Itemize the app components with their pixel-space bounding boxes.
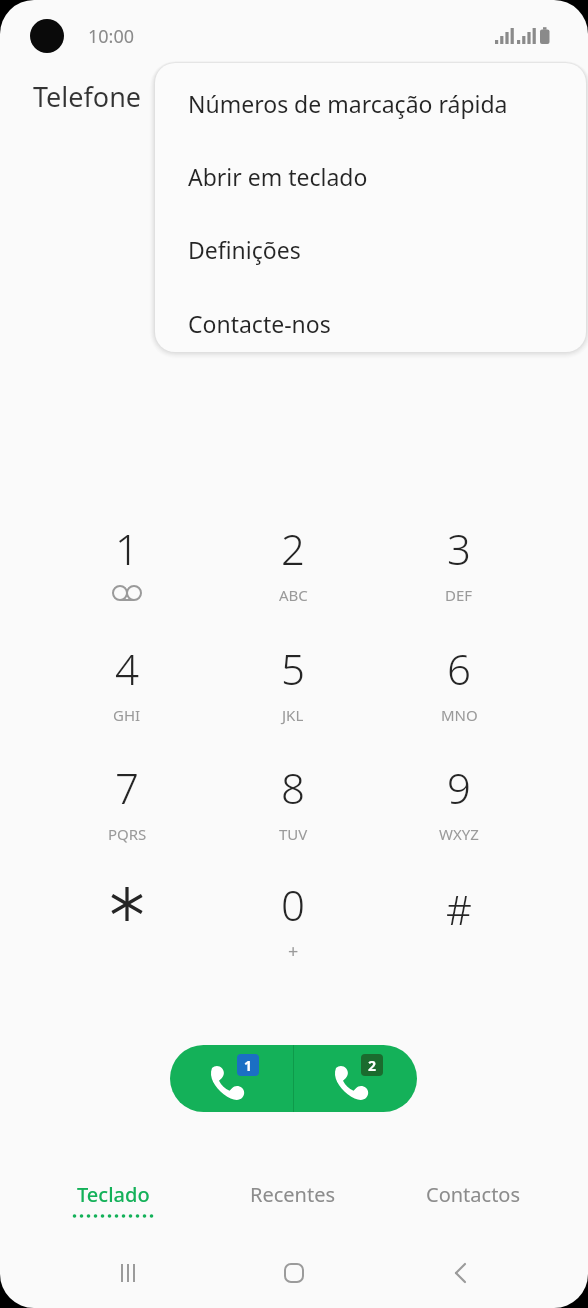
staticText: 7 bbox=[115, 759, 139, 816]
button[interactable]: Definições bbox=[155, 229, 586, 302]
button[interactable]: 4 bbox=[65, 640, 189, 736]
button[interactable]: Home bbox=[259, 1245, 329, 1301]
staticText: Contacte-nos bbox=[188, 308, 331, 339]
staticText: MNO bbox=[441, 705, 478, 725]
staticText: Recentes bbox=[250, 1181, 336, 1208]
staticText: + bbox=[288, 939, 299, 964]
staticText: 2 bbox=[368, 1056, 377, 1075]
button[interactable]: Recentes bbox=[203, 1165, 383, 1227]
button[interactable]: Números de marcação rápida bbox=[155, 83, 586, 156]
staticText: GHI bbox=[113, 705, 141, 725]
button[interactable]: 9 bbox=[397, 759, 521, 855]
staticText: 1 bbox=[244, 1056, 253, 1075]
staticText: TUV bbox=[279, 824, 308, 844]
button[interactable]: Contacte-nos bbox=[155, 303, 586, 352]
staticText: Telefone bbox=[33, 78, 142, 115]
staticText: 10:00 bbox=[88, 24, 135, 49]
staticText: 0 bbox=[281, 876, 305, 933]
button[interactable]: 2 bbox=[231, 520, 355, 616]
staticText: 3 bbox=[447, 520, 471, 577]
button[interactable]: Back bbox=[424, 1245, 494, 1301]
button[interactable] bbox=[65, 876, 189, 972]
button[interactable]: Call with SIM 2 bbox=[294, 1045, 417, 1112]
button[interactable]: 6 bbox=[397, 640, 521, 736]
staticText: DEF bbox=[445, 585, 473, 605]
button[interactable]: Abrir em teclado bbox=[155, 156, 586, 229]
staticText: 8 bbox=[281, 759, 305, 816]
staticText: 2 bbox=[281, 520, 305, 577]
staticText: WXYZ bbox=[439, 824, 479, 844]
button[interactable]: 1 bbox=[65, 520, 189, 616]
button[interactable]: Recent apps bbox=[95, 1245, 165, 1301]
button[interactable]: Call with SIM 1 bbox=[170, 1045, 293, 1112]
staticText: Números de marcação rápida bbox=[188, 88, 508, 119]
button[interactable]: # bbox=[397, 876, 521, 972]
staticText: ABC bbox=[279, 585, 308, 605]
button[interactable]: 3 bbox=[397, 520, 521, 616]
staticText: Definições bbox=[188, 234, 301, 265]
staticText: JKL bbox=[282, 705, 304, 725]
staticText: PQRS bbox=[108, 824, 147, 844]
staticText: Abrir em teclado bbox=[188, 161, 368, 192]
staticText: Teclado bbox=[77, 1181, 150, 1208]
staticText: 9 bbox=[447, 759, 471, 816]
button[interactable]: Contactos bbox=[383, 1165, 563, 1227]
button[interactable]: 8 bbox=[231, 759, 355, 855]
staticText: 4 bbox=[115, 640, 139, 697]
staticText: 6 bbox=[447, 640, 471, 697]
staticText: # bbox=[446, 882, 472, 936]
staticText: 1 bbox=[115, 520, 139, 577]
button[interactable]: 5 bbox=[231, 640, 355, 736]
button[interactable]: Teclado bbox=[23, 1165, 203, 1227]
staticText: 5 bbox=[281, 640, 305, 697]
staticText: Contactos bbox=[426, 1181, 521, 1208]
button[interactable]: 0 bbox=[231, 876, 355, 972]
button[interactable]: 7 bbox=[65, 759, 189, 855]
